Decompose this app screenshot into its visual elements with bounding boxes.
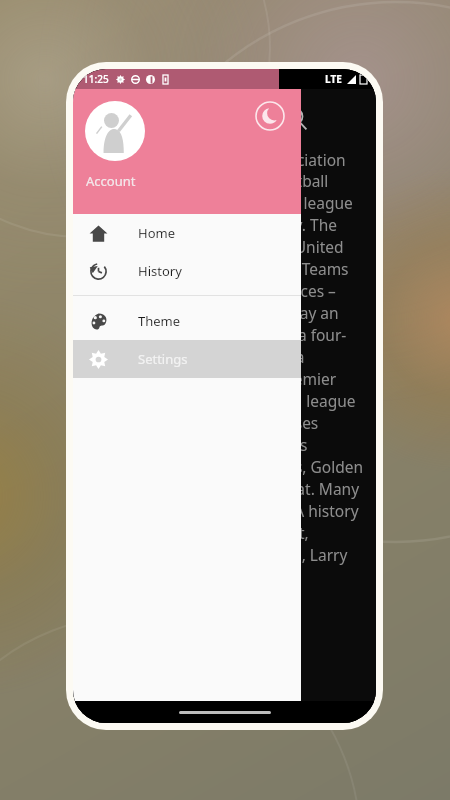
button[interactable]: Settings (73, 340, 301, 378)
button[interactable]: History (73, 252, 301, 290)
button[interactable]: Home (73, 214, 301, 252)
button[interactable]: Toggle dark mode (253, 99, 287, 133)
staticText: Theme (138, 312, 181, 330)
staticText: LTE (325, 72, 342, 86)
button[interactable]: Theme (73, 302, 301, 340)
staticText: Settings (138, 350, 188, 368)
button[interactable]: Profile picture (85, 101, 145, 161)
button[interactable]: Search (276, 99, 316, 139)
staticText: The National Basketball Association (NBA… (87, 149, 364, 588)
staticText: Home (138, 224, 175, 242)
staticText: Account (86, 172, 136, 190)
button[interactable]: Enter marquee (87, 98, 262, 140)
staticText: 11:25 (83, 72, 109, 86)
staticText: History (138, 262, 182, 280)
staticText: Enter marquee (95, 109, 201, 129)
